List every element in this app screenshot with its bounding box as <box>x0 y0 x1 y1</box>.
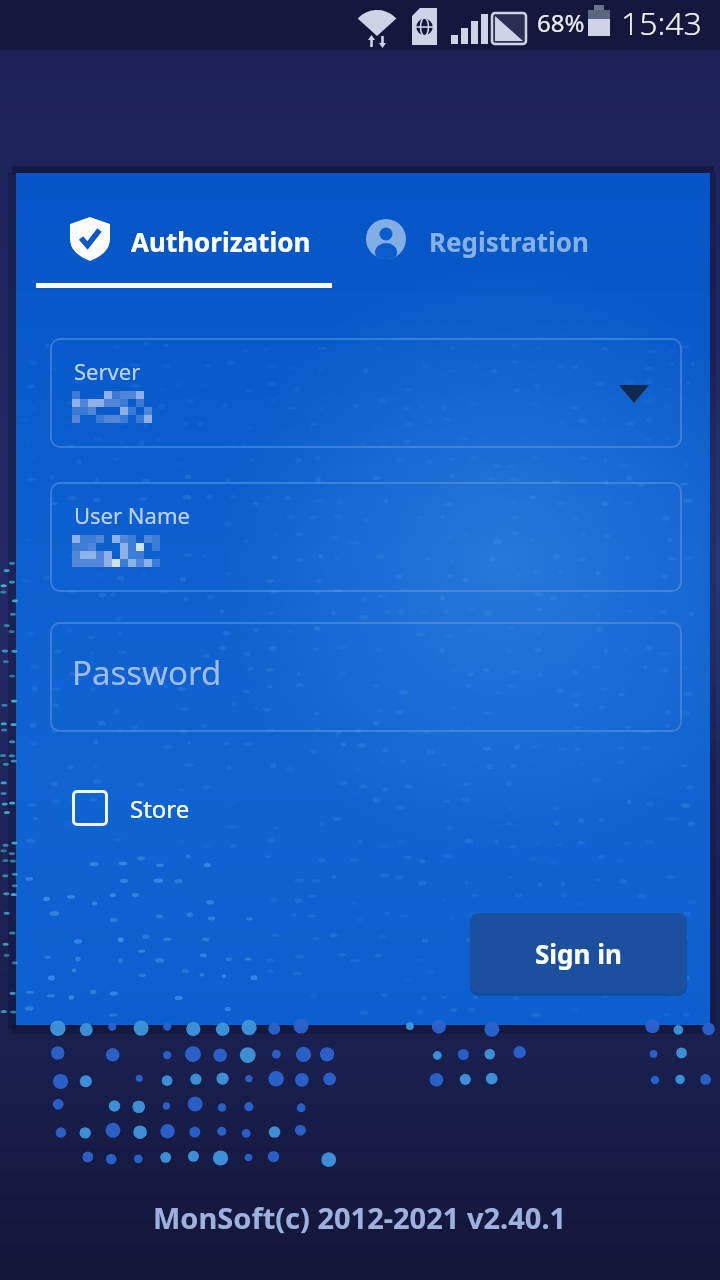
button[interactable] <box>50 622 682 732</box>
button[interactable] <box>50 338 682 448</box>
button[interactable] <box>60 778 200 838</box>
staticText: Store <box>130 792 190 825</box>
staticText: MonSoft(c) 2012-2021 v2.40.1 <box>153 1198 567 1237</box>
button[interactable]: Sign in <box>470 913 687 993</box>
staticText: Password <box>72 650 222 695</box>
staticText: 68% <box>537 6 585 39</box>
staticText: 15:43 <box>621 1 702 45</box>
staticText: Authorization <box>131 224 311 259</box>
staticText: User Name <box>74 500 190 530</box>
button[interactable] <box>60 205 310 275</box>
button[interactable] <box>50 482 682 592</box>
staticText: Registration <box>429 224 590 259</box>
staticText: Server <box>74 356 141 386</box>
button[interactable] <box>360 205 590 275</box>
staticText: Sign in <box>535 936 622 971</box>
